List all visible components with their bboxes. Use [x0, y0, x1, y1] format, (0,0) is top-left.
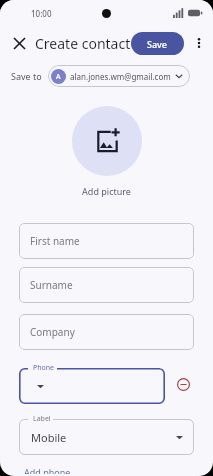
button[interactable]: A — [48, 65, 190, 87]
button[interactable]: Surname — [19, 267, 194, 303]
staticText: First name — [30, 234, 80, 248]
staticText: Company — [30, 325, 75, 339]
staticText: Save to — [11, 70, 42, 82]
button[interactable]: Mobile — [19, 419, 194, 455]
staticText: Surname — [30, 278, 73, 292]
staticText: A — [56, 72, 61, 82]
staticText: Add picture — [82, 185, 131, 197]
staticText: Add phone — [24, 466, 71, 474]
button[interactable] — [19, 368, 165, 404]
button[interactable]: First name — [19, 223, 194, 259]
staticText: Mobile — [31, 430, 67, 445]
staticText: alan.jones.wm@gmail.com — [70, 71, 171, 82]
staticText: Label — [33, 414, 51, 424]
staticText: 10:00 — [31, 8, 52, 19]
staticText: Create contact — [35, 34, 131, 53]
button[interactable]: Save — [131, 32, 184, 55]
button[interactable]: Remove phone — [172, 373, 194, 395]
button[interactable]: Company — [19, 314, 194, 350]
button[interactable]: More options — [188, 31, 210, 55]
staticText: Save — [147, 38, 168, 50]
button[interactable]: Add picture — [72, 106, 142, 176]
button[interactable]: Add phone — [19, 464, 76, 476]
staticText: Phone — [33, 363, 55, 373]
button[interactable]: Close — [6, 30, 32, 56]
